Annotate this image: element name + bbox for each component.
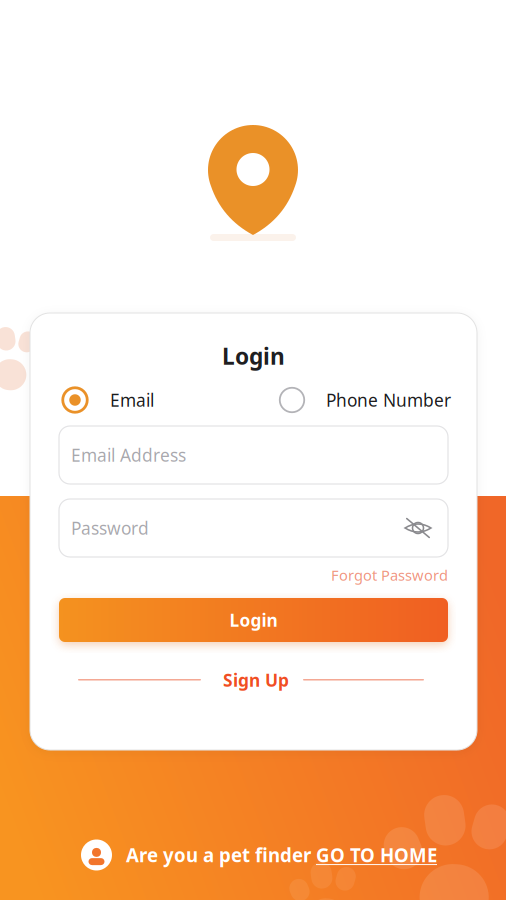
staticText: Password: [71, 516, 149, 539]
staticText: Email: [110, 388, 154, 411]
button[interactable]: Are you a pet finder GO TO HOME: [81, 835, 441, 875]
staticText: Phone Number: [326, 388, 451, 411]
staticText: Forgot Password: [331, 565, 448, 585]
button[interactable]: Phone Number: [278, 386, 451, 414]
staticText: Login: [222, 341, 285, 371]
staticText: Login: [229, 608, 277, 631]
button[interactable]: Email: [61, 386, 154, 414]
button[interactable]: Sign Up: [220, 668, 292, 692]
button[interactable]: Login: [59, 598, 448, 642]
staticText: Email Address: [71, 443, 186, 466]
button[interactable]: Forgot Password: [59, 565, 448, 585]
staticText: Sign Up: [223, 668, 289, 691]
button[interactable]: Show password: [404, 516, 436, 540]
staticText: Are you a pet finder GO TO HOME: [126, 843, 437, 867]
